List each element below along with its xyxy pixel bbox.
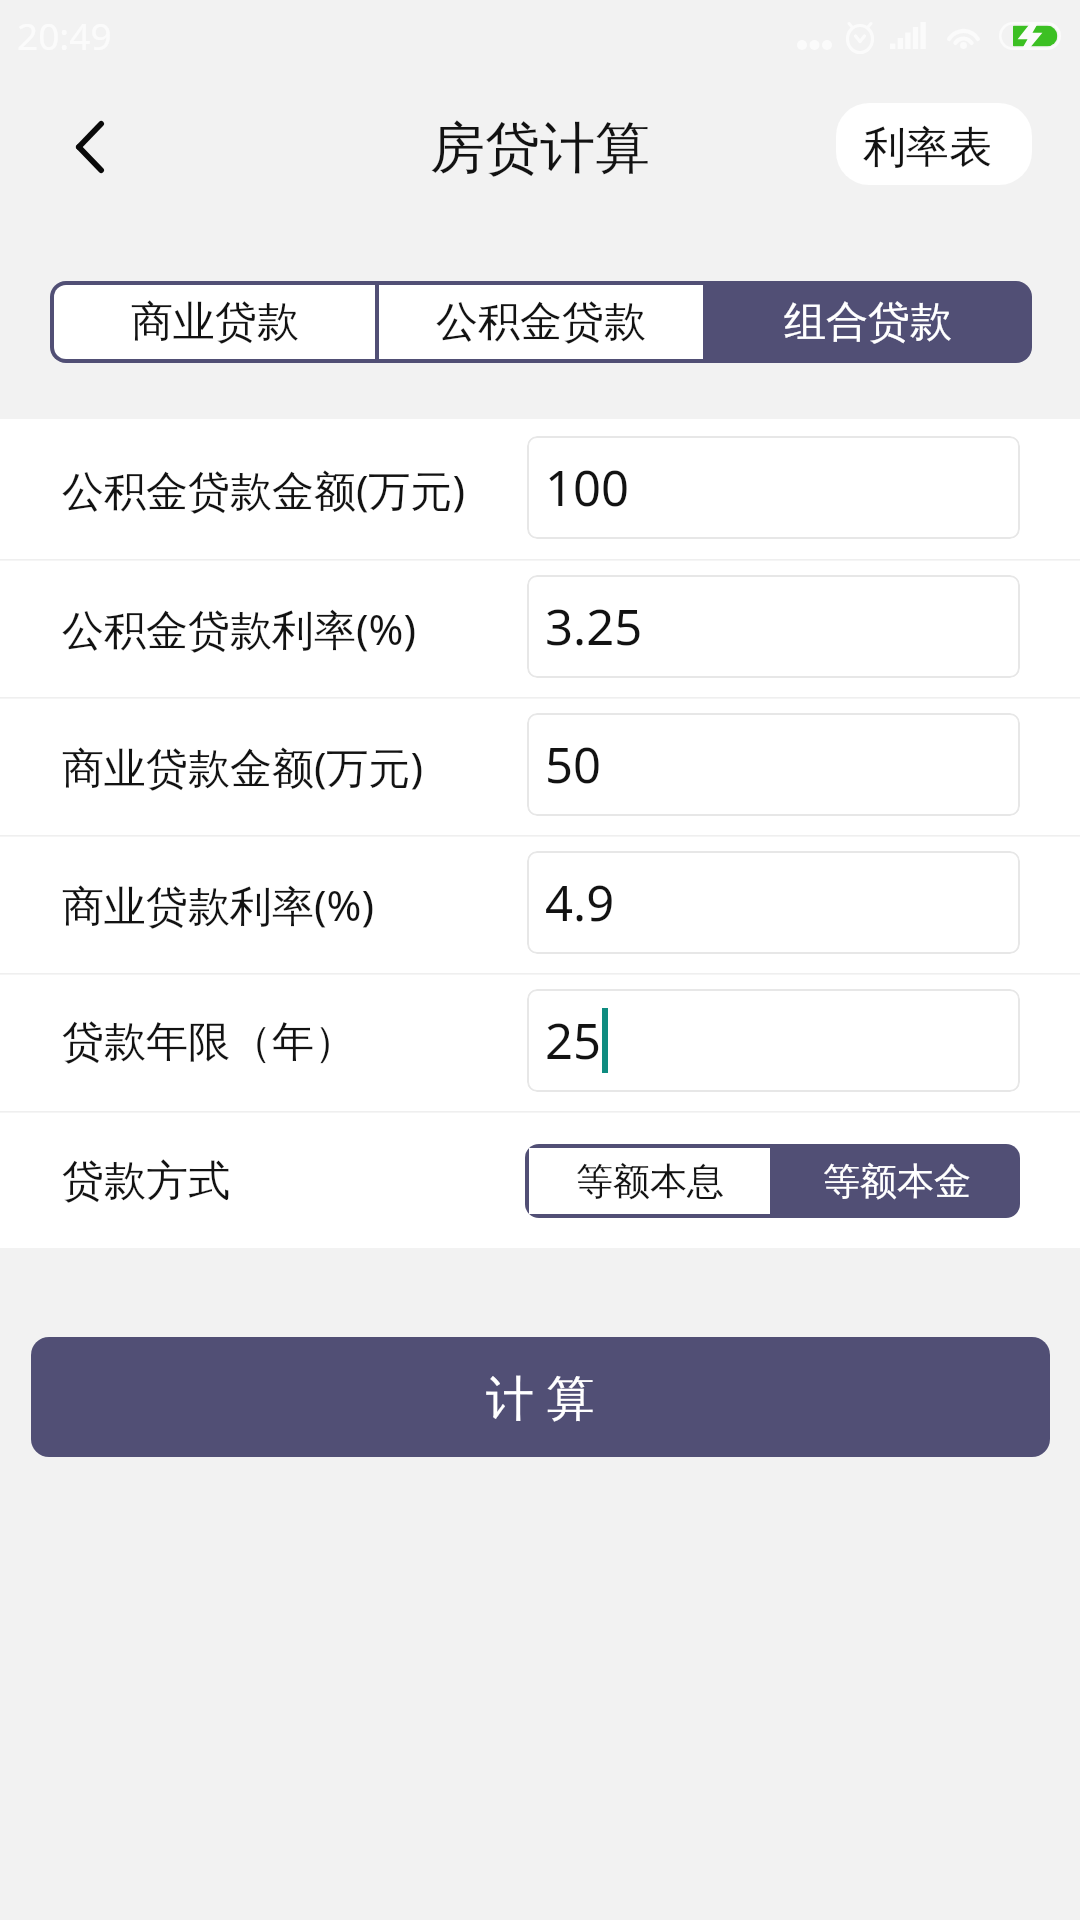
button[interactable]: 公积金贷款 [379,285,703,359]
staticText: 计 算 [486,1364,595,1430]
staticText: 等额本金 [823,1158,971,1205]
staticText: 房贷计算 [430,114,650,183]
button[interactable]: 3.25 [527,575,1020,678]
button[interactable]: 等额本金 [774,1144,1020,1218]
button[interactable]: 贷款年限（年） [0,973,1080,1111]
button[interactable]: 商业贷款金额(万元) [0,697,1080,835]
staticText: 公积金贷款金额(万元) [62,461,466,518]
staticText: 利率表 [863,121,992,175]
staticText: 公积金贷款 [436,296,646,349]
button[interactable]: 利率表 [836,103,1032,185]
staticText: 50 [545,731,602,798]
staticText: 25 [545,1007,602,1074]
button[interactable]: 公积金贷款利率(%) [0,559,1080,697]
staticText: 等额本息 [576,1158,724,1205]
staticText: 商业贷款利率(%) [62,876,375,933]
staticText: 贷款年限（年） [62,1016,356,1069]
staticText: 4.9 [545,869,615,936]
button[interactable]: 计 算 [31,1337,1050,1457]
button[interactable]: 50 [527,713,1020,816]
staticText: 3.25 [545,593,643,660]
button[interactable]: 等额本息 [529,1148,770,1214]
staticText: 商业贷款金额(万元) [62,738,424,795]
staticText: 贷款方式 [62,1155,230,1208]
button[interactable]: 25 [527,989,1020,1092]
staticText: 组合贷款 [784,296,952,349]
button[interactable]: 公积金贷款金额(万元) [0,419,1080,559]
button[interactable]: 100 [527,436,1020,539]
staticText: 商业贷款 [131,296,299,349]
staticText: 公积金贷款利率(%) [62,600,417,657]
button[interactable]: 商业贷款利率(%) [0,835,1080,973]
staticText: 100 [545,454,630,521]
button[interactable]: 商业贷款 [54,285,375,359]
button[interactable]: Back [50,107,130,187]
button[interactable]: 组合贷款 [703,281,1032,363]
button[interactable]: 4.9 [527,851,1020,954]
staticText: 20:49 [17,10,112,60]
